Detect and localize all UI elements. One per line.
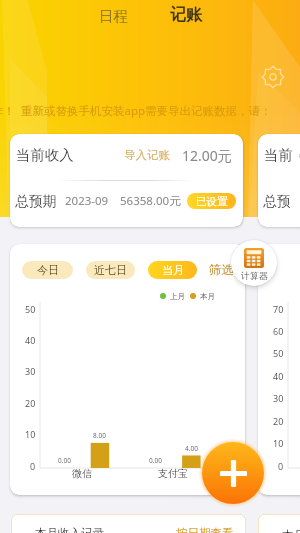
button[interactable]: 日程 bbox=[89, 0, 138, 32]
staticText: 已设置 bbox=[196, 195, 228, 208]
button[interactable]: Settings bbox=[259, 63, 287, 91]
staticText: 56358.00元 bbox=[120, 193, 181, 209]
button[interactable]: 本月 bbox=[258, 514, 300, 533]
staticText: 10 bbox=[273, 437, 284, 449]
button[interactable]: 当前收入 bbox=[10, 134, 243, 227]
staticText: 10 bbox=[25, 428, 36, 440]
staticText: 总预算 bbox=[263, 193, 300, 210]
staticText: 4.00 bbox=[185, 444, 198, 453]
staticText: 30 bbox=[25, 365, 36, 377]
button[interactable]: Add record bbox=[202, 442, 264, 504]
staticText: 筛选 bbox=[209, 262, 234, 278]
button[interactable]: 近七日 bbox=[86, 261, 135, 279]
button[interactable]: 本月收入记录 bbox=[11, 514, 246, 533]
staticText: 8.00 bbox=[93, 431, 106, 440]
button[interactable]: 作！ 重新或替换手机安装app需要导出记账数据，请： 作！ 重新 bbox=[0, 101, 300, 121]
staticText: 2023-09 bbox=[65, 193, 109, 209]
staticText: 20 bbox=[273, 415, 284, 427]
staticText: 总预期 bbox=[15, 193, 57, 210]
staticText: 当前支出 bbox=[264, 146, 299, 164]
staticText: 支付宝 bbox=[158, 467, 188, 479]
staticText: 日程 bbox=[99, 7, 128, 25]
button[interactable]: 筛选 bbox=[208, 258, 235, 282]
staticText: 当月 bbox=[162, 263, 184, 277]
button[interactable]: 导入记账 bbox=[124, 148, 170, 162]
staticText: 记账 bbox=[170, 5, 202, 25]
button[interactable]: 当前支出 bbox=[258, 134, 300, 227]
staticText: 上月 bbox=[170, 292, 185, 301]
button[interactable]: Calculator bbox=[231, 240, 277, 286]
staticText: 计算器 bbox=[241, 270, 268, 280]
staticText: 20 bbox=[25, 397, 36, 409]
button[interactable]: 已设置 bbox=[187, 193, 236, 209]
staticText: 本月收入记录 bbox=[35, 526, 104, 533]
staticText: 作！ 重新或替换手机安装app需要导出记账数据，请： 作！ 重新 bbox=[0, 103, 292, 119]
staticText: 近七日 bbox=[94, 263, 127, 277]
staticText: 60 bbox=[273, 325, 284, 337]
staticText: 本月 bbox=[282, 528, 300, 533]
staticText: 0 bbox=[30, 460, 36, 472]
button[interactable]: 记账 bbox=[160, 0, 212, 32]
staticText: 70 bbox=[273, 303, 284, 315]
staticText: 12.00元 bbox=[182, 146, 232, 165]
button[interactable]: 当月 bbox=[148, 261, 197, 279]
staticText: 微信 bbox=[72, 467, 92, 479]
button[interactable]: 今日 bbox=[22, 261, 73, 279]
staticText: 0 bbox=[278, 460, 284, 472]
staticText: 40 bbox=[273, 370, 284, 382]
staticText: 按日期查看 bbox=[176, 526, 234, 533]
staticText: 50 bbox=[25, 303, 36, 315]
staticText: 本月 bbox=[200, 292, 215, 301]
staticText: 40 bbox=[25, 334, 36, 346]
staticText: 0.00 bbox=[58, 456, 71, 465]
staticText: 当前收入 bbox=[16, 146, 74, 164]
staticText: 0.00 bbox=[149, 456, 162, 465]
staticText: 50 bbox=[273, 347, 284, 359]
staticText: 今日 bbox=[37, 263, 59, 277]
staticText: 30 bbox=[273, 392, 284, 404]
